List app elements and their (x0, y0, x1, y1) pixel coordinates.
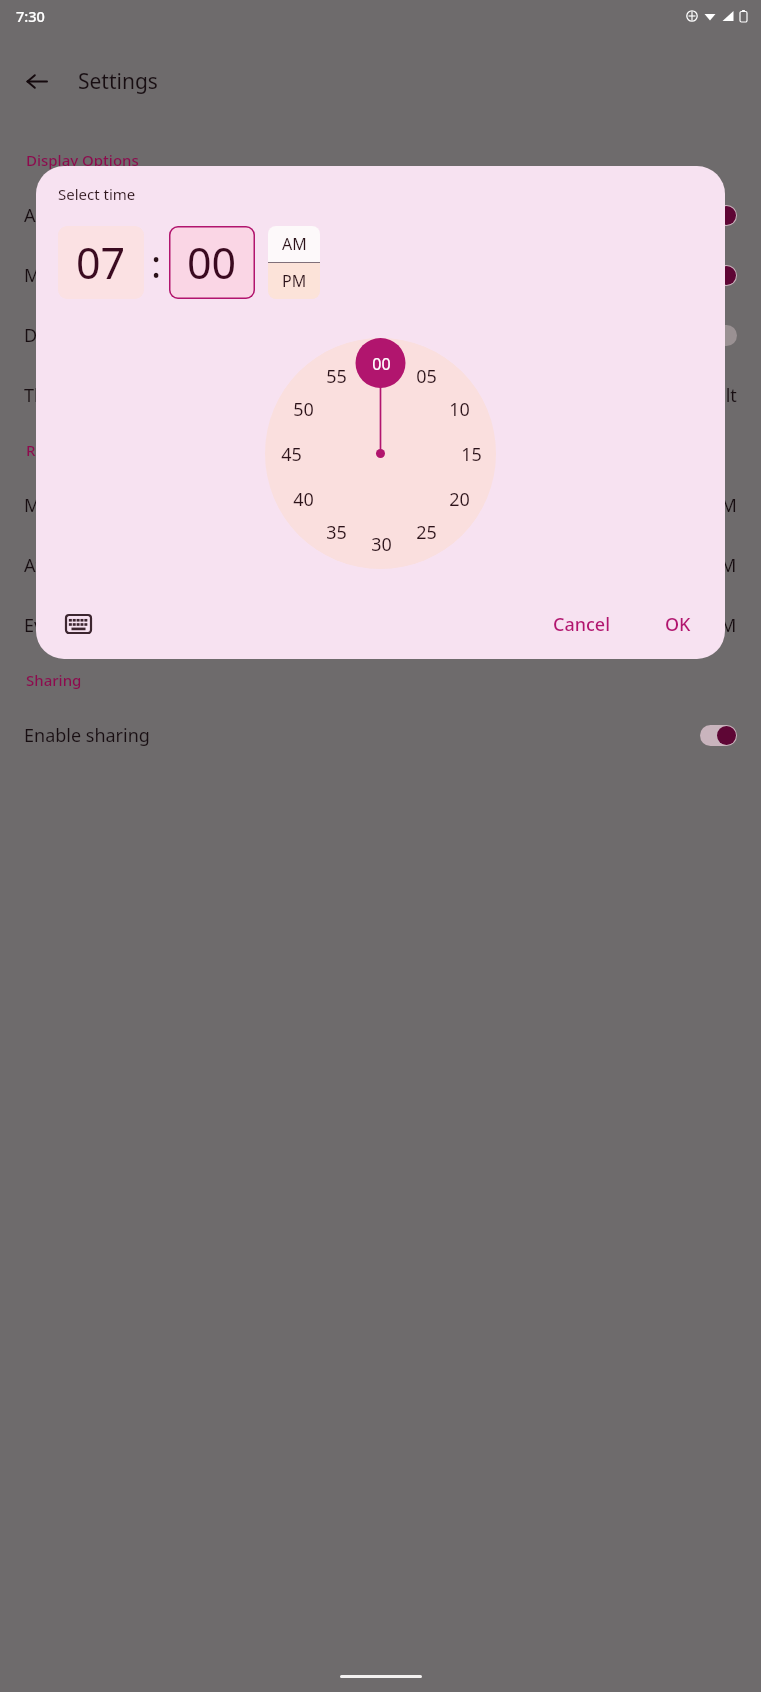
staticText: Reminders (26, 440, 104, 460)
button[interactable]: Add new items to bottom (0, 185, 761, 245)
button[interactable]: Evening reminder time (0, 595, 761, 655)
staticText: 20 (449, 487, 470, 512)
staticText: Display Options (26, 150, 139, 170)
staticText: Add new items to bottom (24, 203, 700, 228)
staticText: 05 (416, 364, 437, 389)
staticText: Settings (78, 67, 158, 96)
staticText: 40 (293, 487, 314, 512)
staticText: 07 (76, 233, 126, 292)
staticText: OK (665, 612, 691, 637)
staticText: 25 (416, 520, 437, 545)
button[interactable]: 07 (58, 226, 144, 299)
button[interactable]: 05 (405, 355, 447, 397)
staticText: 30 (371, 532, 392, 557)
staticText: 7:30 (16, 6, 45, 26)
button[interactable]: Move checked items to bottom (0, 245, 761, 305)
button[interactable]: PM (268, 263, 320, 299)
staticText: 15 (461, 442, 482, 467)
staticText: Display checked item count (24, 323, 700, 348)
staticText: Evening reminder time (24, 613, 709, 638)
button[interactable]: Morning reminder time (0, 475, 761, 535)
button[interactable]: 10 (438, 388, 480, 430)
button[interactable]: 40 (282, 478, 324, 520)
staticText: 35 (326, 520, 347, 545)
staticText: PM (709, 553, 737, 578)
staticText: Afternoon reminder time (24, 553, 709, 578)
button[interactable]: AM (268, 226, 320, 262)
staticText: 55 (326, 364, 347, 389)
staticText: AM (709, 493, 737, 518)
button[interactable]: 00 (360, 343, 402, 385)
staticText: 50 (293, 397, 314, 422)
staticText: PM (282, 270, 307, 292)
staticText: Select time (58, 184, 136, 204)
button[interactable]: 50 (282, 388, 324, 430)
button[interactable]: Display checked item count (0, 305, 761, 365)
button[interactable]: 45 (270, 433, 312, 475)
button[interactable]: Theme (0, 365, 761, 425)
staticText: Default (675, 383, 737, 408)
button[interactable]: Afternoon reminder time (0, 535, 761, 595)
button[interactable]: OK (653, 604, 703, 645)
button[interactable]: 20 (438, 478, 480, 520)
staticText: 45 (281, 442, 302, 467)
staticText: Sharing (26, 670, 82, 690)
staticText: 00 (187, 233, 237, 292)
button[interactable]: Switch to text input (58, 604, 98, 644)
button[interactable]: Enable sharing (0, 705, 761, 765)
staticText: Enable sharing (24, 723, 700, 748)
staticText: Morning reminder time (24, 493, 709, 518)
staticText: Theme (24, 383, 675, 408)
button[interactable]: Back (14, 59, 58, 103)
button[interactable]: 30 (360, 523, 402, 565)
button[interactable]: 35 (315, 511, 357, 553)
button[interactable]: 55 (315, 355, 357, 397)
button[interactable]: 00 (169, 226, 255, 299)
staticText: Cancel (553, 612, 611, 637)
button[interactable]: 15 (450, 433, 492, 475)
staticText: Move checked items to bottom (24, 263, 700, 288)
staticText: : (151, 237, 162, 289)
button[interactable]: Cancel (541, 604, 623, 645)
button[interactable]: 25 (405, 511, 447, 553)
staticText: 10 (449, 397, 470, 422)
staticText: 00 (372, 353, 391, 375)
staticText: AM (282, 233, 307, 255)
staticText: PM (709, 613, 737, 638)
